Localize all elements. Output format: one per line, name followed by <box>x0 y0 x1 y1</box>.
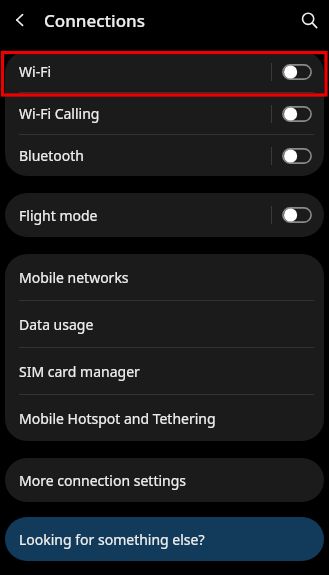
staticText: Mobile Hotspot and Tethering <box>19 409 216 428</box>
staticText: Looking for something else? <box>19 530 205 549</box>
staticText: Data usage <box>19 315 94 334</box>
staticText: More connection settings <box>19 471 187 490</box>
button[interactable]: More connection settings <box>5 458 324 502</box>
staticText: Flight mode <box>19 206 98 225</box>
button[interactable]: Data usage <box>5 301 324 347</box>
staticText: Mobile networks <box>19 268 129 287</box>
button[interactable]: Toggle <box>282 148 312 164</box>
button[interactable]: SIM card manager <box>5 348 324 394</box>
button[interactable]: Toggle <box>282 207 312 223</box>
button[interactable]: Toggle <box>282 106 312 122</box>
button[interactable]: Back <box>0 0 40 40</box>
staticText: Wi-Fi Calling <box>19 104 100 123</box>
button[interactable]: Looking for something else? <box>5 517 324 561</box>
button[interactable]: Mobile Hotspot and Tethering <box>5 395 324 441</box>
staticText: Wi-Fi <box>19 62 52 81</box>
staticText: Connections <box>44 9 146 32</box>
button[interactable]: Bluetooth <box>5 135 324 176</box>
button[interactable]: Flight mode <box>5 193 324 237</box>
button[interactable]: Wi-Fi Calling <box>5 93 324 134</box>
button[interactable]: Mobile networks <box>5 254 324 300</box>
staticText: SIM card manager <box>19 362 140 381</box>
button[interactable]: Toggle <box>282 64 312 80</box>
staticText: Bluetooth <box>19 146 84 165</box>
button[interactable]: Search <box>289 0 329 40</box>
button[interactable]: Wi-Fi <box>5 51 324 92</box>
